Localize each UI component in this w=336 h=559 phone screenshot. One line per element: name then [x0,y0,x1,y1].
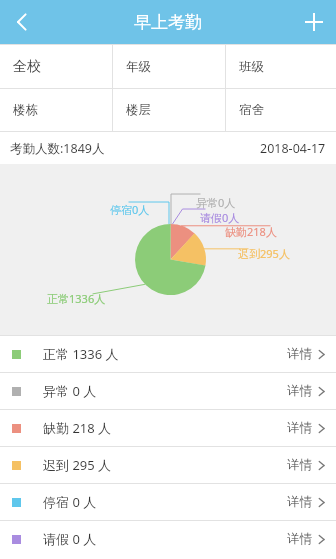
staticText: 请假 0 人 [43,530,97,548]
staticText: 考勤人数:1849人 [10,140,105,157]
button[interactable]: 班级 [226,45,336,88]
staticText: 详情 [287,457,312,473]
staticText: 停宿0人 [110,202,150,217]
staticText: 详情 [287,494,312,510]
staticText: 请假0人 [200,210,240,225]
button[interactable]: 异常 0 人 [0,373,336,409]
staticText: 正常1336人 [47,291,106,306]
staticText: 详情 [287,346,312,362]
button[interactable]: 迟到 295 人 [0,447,336,483]
button[interactable]: 全校 [0,45,112,88]
staticText: 年级 [126,59,151,75]
button[interactable]: 缺勤 218 人 [0,410,336,446]
staticText: 详情 [287,383,312,399]
button[interactable]: 正常 1336 人 [0,336,336,372]
staticText: 缺勤218人 [225,224,277,239]
button[interactable]: 楼栋 [0,89,112,131]
staticText: 迟到295人 [238,246,290,261]
staticText: 班级 [239,59,264,75]
button[interactable]: Add [292,0,336,44]
staticText: 迟到 295 人 [43,456,112,474]
button[interactable]: 请假 0 人 [0,521,336,557]
staticText: 2018-04-17 [260,140,326,157]
staticText: 正常 1336 人 [43,345,119,363]
staticText: 全校 [13,58,41,76]
staticText: 详情 [287,531,312,547]
staticText: 详情 [287,420,312,436]
button[interactable]: 停宿 0 人 [0,484,336,520]
staticText: 异常 0 人 [43,382,97,400]
staticText: 楼层 [126,102,151,118]
button[interactable]: Back [0,0,44,44]
staticText: 缺勤 218 人 [43,419,112,437]
button[interactable]: 楼层 [113,89,225,131]
staticText: 楼栋 [13,102,38,118]
staticText: 宿舍 [239,102,264,118]
button[interactable]: 宿舍 [226,89,336,131]
staticText: 早上考勤 [134,12,202,33]
staticText: 停宿 0 人 [43,493,97,511]
button[interactable]: 年级 [113,45,225,88]
staticText: 异常0人 [196,195,236,210]
